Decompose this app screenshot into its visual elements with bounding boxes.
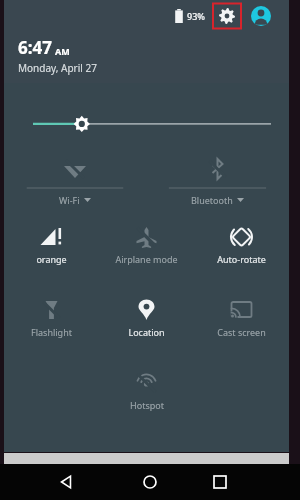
staticText: Wi-Fi bbox=[59, 194, 80, 206]
staticText: Monday, April 27 bbox=[18, 61, 97, 75]
button[interactable]: Bluetooth bbox=[146, 145, 289, 215]
staticText: Auto-rotate bbox=[217, 253, 266, 265]
button[interactable]: Home bbox=[132, 464, 168, 500]
button[interactable]: orange bbox=[4, 215, 99, 288]
staticText: Flashlight bbox=[31, 326, 72, 338]
staticText: Airplane mode bbox=[115, 253, 178, 265]
staticText: Cast screen bbox=[217, 326, 266, 338]
button[interactable]: Auto-rotate bbox=[194, 215, 289, 288]
staticText: Location bbox=[128, 326, 165, 338]
button[interactable]: User bbox=[251, 6, 271, 26]
staticText: Bluetooth bbox=[191, 194, 233, 206]
button[interactable]: Wi-Fi bbox=[4, 145, 146, 215]
button[interactable]: Location bbox=[99, 288, 194, 361]
button[interactable]: Brightness bbox=[4, 83, 289, 145]
button[interactable]: Hotspot bbox=[99, 361, 194, 434]
staticText: AM bbox=[55, 45, 70, 57]
button[interactable]: Airplane mode bbox=[99, 215, 194, 288]
staticText: 93% bbox=[187, 10, 205, 22]
button[interactable]: Recent apps bbox=[202, 464, 238, 500]
staticText: Hotspot bbox=[130, 399, 164, 411]
button[interactable]: Settings bbox=[213, 2, 241, 30]
staticText: orange bbox=[36, 253, 67, 265]
button[interactable]: Flashlight bbox=[4, 288, 99, 361]
staticText: 6:47 bbox=[18, 36, 52, 59]
button[interactable]: Cast screen bbox=[194, 288, 289, 361]
button[interactable]: Back bbox=[48, 464, 84, 500]
